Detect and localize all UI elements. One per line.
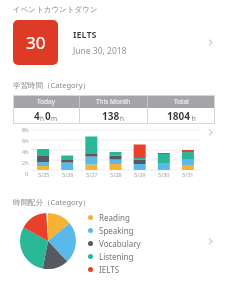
staticText: 0: [25, 170, 29, 177]
staticText: 5/29: [134, 171, 146, 178]
button[interactable]: Today: [13, 95, 215, 124]
staticText: 2h: [22, 159, 29, 166]
staticText: June 30, 2018: [73, 45, 127, 57]
staticText: 5/26: [62, 171, 74, 178]
staticText: h: [120, 114, 125, 123]
staticText: 5/28: [110, 171, 122, 178]
staticText: Vocabulary: [99, 238, 141, 249]
staticText: 4: [34, 109, 40, 123]
staticText: IELTS: [73, 28, 97, 40]
button[interactable]: 8h: [0, 124, 228, 197]
staticText: IELTS: [99, 264, 120, 275]
staticText: Today: [37, 97, 56, 106]
button[interactable]: Reading: [0, 207, 228, 300]
staticText: 5/30: [158, 171, 170, 178]
staticText: 1804: [167, 109, 190, 123]
staticText: This Month: [96, 97, 131, 106]
staticText: 学習時間（Category）: [13, 80, 90, 90]
staticText: Speaking: [99, 225, 134, 236]
staticText: 5/25: [38, 171, 50, 178]
staticText: Total: [174, 97, 189, 106]
staticText: 6h: [22, 137, 29, 144]
staticText: 4h: [22, 148, 29, 155]
staticText: 5/31: [182, 171, 194, 178]
staticText: Reading: [99, 212, 130, 223]
staticText: イベントカウントダウン: [13, 5, 98, 14]
staticText: 8h: [22, 126, 29, 133]
other: Open study time chart: [204, 126, 217, 139]
staticText: 138: [102, 109, 120, 123]
other: Open time distribution: [204, 235, 217, 248]
staticText: 30: [26, 31, 46, 54]
staticText: h: [190, 114, 196, 123]
staticText: Listening: [99, 251, 134, 262]
staticText: 時間配分（Category）: [13, 197, 90, 207]
staticText: 0: [45, 109, 51, 123]
other: Open event details: [204, 36, 217, 49]
staticText: m: [51, 114, 58, 123]
staticText: h: [40, 114, 45, 123]
button[interactable]: 30: [0, 14, 228, 70]
staticText: 5/27: [86, 171, 98, 178]
